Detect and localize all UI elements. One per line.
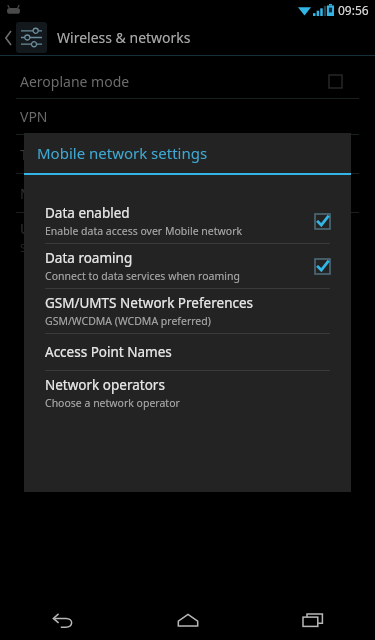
- button[interactable]: Navigate up: [0, 20, 49, 55]
- button[interactable]: Home: [125, 600, 250, 640]
- other: Toggle setting: [315, 259, 330, 274]
- button[interactable]: Network operators: [24, 371, 351, 415]
- staticText: Data enabled: [45, 204, 130, 222]
- staticText: Access Point Names: [45, 343, 172, 361]
- staticText: USB Internet: [20, 219, 105, 238]
- staticText: Wireless & networks: [57, 28, 191, 47]
- staticText: Share PC internet connection: [20, 240, 171, 255]
- button[interactable]: GSM/UMTS Network Preferences: [24, 289, 351, 333]
- staticText: Choose a network operator: [45, 396, 180, 410]
- staticText: Enable data access over Mobile network: [45, 224, 243, 238]
- staticText: Network operators: [45, 376, 165, 394]
- button[interactable]: Data enabled: [24, 199, 351, 243]
- button[interactable]: Mobile networks: [0, 174, 375, 212]
- staticText: Connect to data services when roaming: [45, 269, 240, 283]
- button[interactable]: Data roaming: [24, 244, 351, 288]
- button[interactable]: Tethering & portable hotspot: [0, 135, 375, 173]
- staticText: Mobile network settings: [37, 143, 208, 163]
- staticText: Tethering & portable hotspot: [20, 145, 212, 164]
- other: Toggle setting: [315, 214, 330, 229]
- button[interactable]: Recent apps: [250, 600, 375, 640]
- button[interactable]: USB Internet: [0, 213, 375, 257]
- staticText: Data roaming: [45, 249, 133, 267]
- staticText: GSM/UMTS Network Preferences: [45, 294, 254, 312]
- staticText: GSM/WCDMA (WCDMA preferred): [45, 314, 211, 328]
- staticText: VPN: [20, 107, 48, 126]
- staticText: Mobile networks: [20, 184, 130, 203]
- button[interactable]: Aeroplane mode: [0, 64, 375, 98]
- button[interactable]: Back: [0, 600, 125, 640]
- button[interactable]: Access Point Names: [24, 334, 351, 370]
- button[interactable]: VPN: [0, 99, 375, 134]
- staticText: 09:56: [338, 2, 369, 18]
- staticText: Aeroplane mode: [20, 72, 130, 91]
